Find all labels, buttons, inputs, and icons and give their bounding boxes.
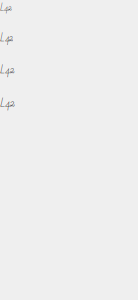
staticText: L42 [0,30,13,47]
staticText: L42 [0,93,15,113]
staticText: L42 [0,0,12,16]
staticText: L42 [0,61,15,79]
